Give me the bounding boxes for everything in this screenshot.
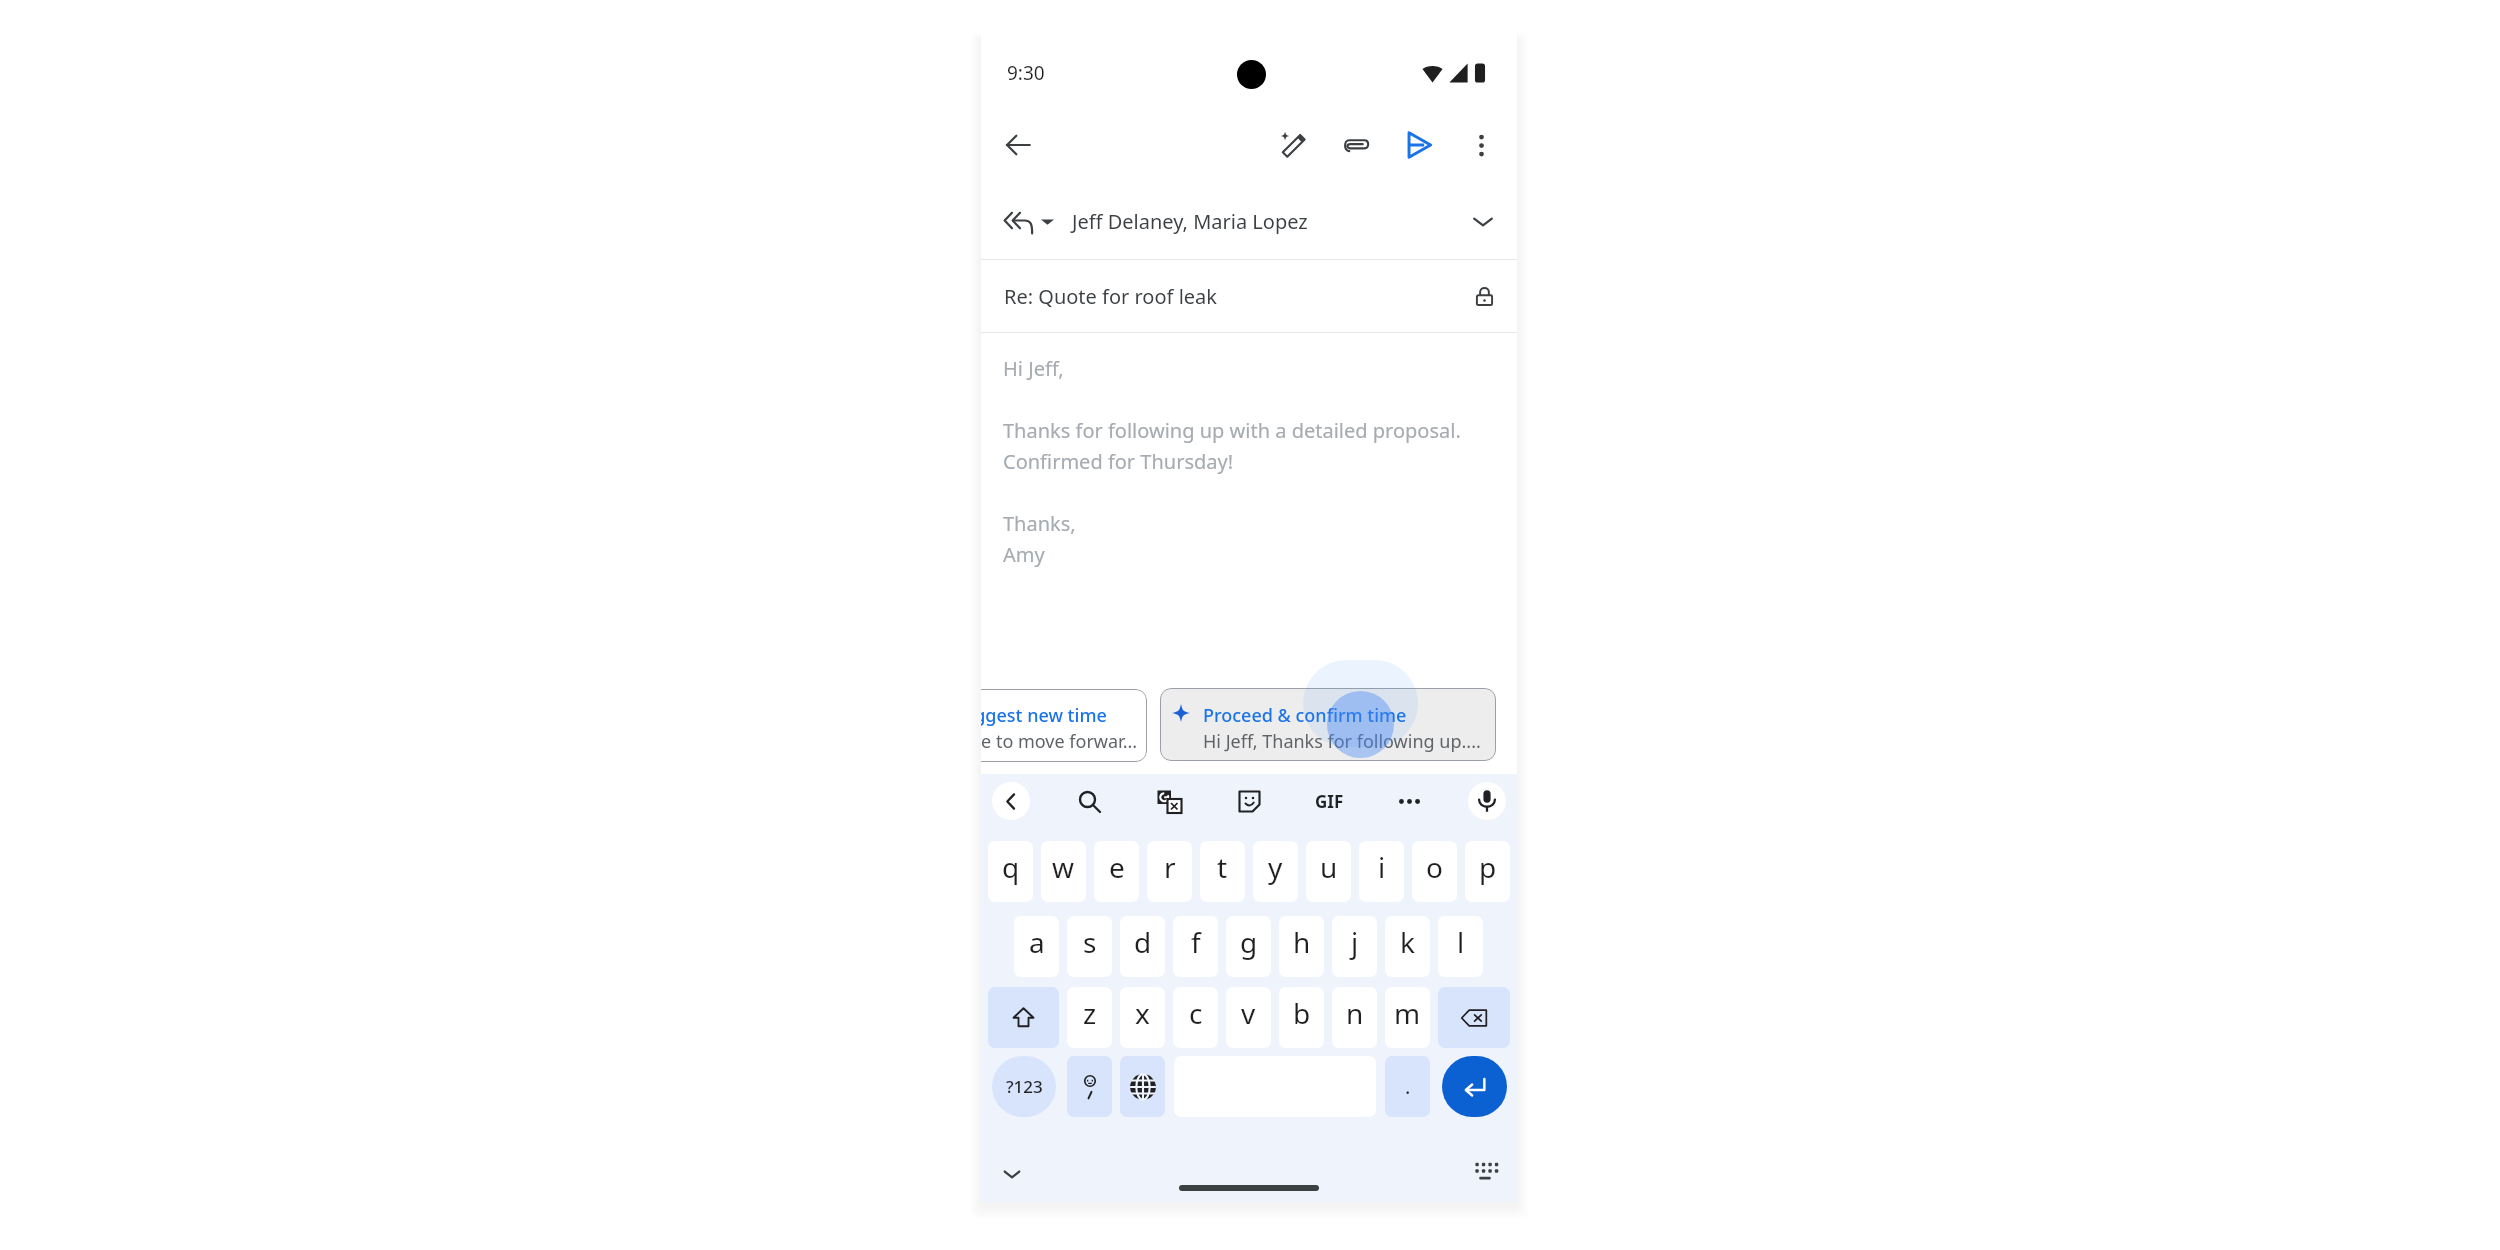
staticText: t	[1217, 848, 1228, 886]
staticText: GIF	[1315, 790, 1344, 813]
button[interactable]: l	[1438, 916, 1483, 977]
staticText: Hi Jeff, Thanks for following up....	[1203, 729, 1481, 754]
button[interactable]: Switch keyboard	[1465, 1149, 1505, 1189]
staticText: c	[1189, 994, 1203, 1032]
staticText: Hi Jeff, Thanks for following up with a …	[1003, 355, 1461, 568]
staticText: o	[1426, 848, 1443, 886]
staticText: a	[1029, 923, 1045, 961]
button[interactable]: e	[1094, 841, 1139, 902]
button[interactable]: w	[1041, 841, 1086, 902]
button[interactable]: c	[1173, 987, 1218, 1048]
button[interactable]: g	[1226, 916, 1271, 977]
staticText: z	[1083, 994, 1097, 1032]
button[interactable]: Shift	[988, 987, 1059, 1048]
staticText: q	[1002, 848, 1020, 886]
button[interactable]: Send	[1392, 119, 1444, 171]
button[interactable]: a	[1014, 916, 1059, 977]
staticText: w	[1052, 848, 1075, 886]
staticText: .	[1405, 1073, 1411, 1100]
staticText: m	[1394, 994, 1421, 1032]
staticText: d	[1134, 923, 1152, 961]
button[interactable]: Suggest new time	[981, 689, 1147, 762]
button[interactable]: Period	[1385, 1056, 1430, 1117]
button[interactable]: Voice input	[1468, 782, 1506, 820]
button[interactable]: Search	[1068, 780, 1110, 822]
button[interactable]: m	[1385, 987, 1430, 1048]
button[interactable]: s	[1067, 916, 1112, 977]
staticText: h	[1293, 923, 1311, 961]
staticText: Proceed & confirm time	[1203, 703, 1407, 728]
staticText: y	[1268, 848, 1283, 886]
staticText: r	[1164, 848, 1176, 886]
button[interactable]: r	[1147, 841, 1192, 902]
staticText: u	[1320, 848, 1338, 886]
button[interactable]: o	[1412, 841, 1457, 902]
button[interactable]: h	[1279, 916, 1324, 977]
button[interactable]: Change language	[1120, 1056, 1165, 1117]
button[interactable]: Backspace	[1438, 987, 1510, 1048]
button[interactable]: z	[1067, 987, 1112, 1048]
button[interactable]: Translate	[1148, 780, 1190, 822]
staticText: Sure to move forwar...	[981, 729, 1138, 754]
button[interactable]: Enter	[1442, 1056, 1507, 1117]
button[interactable]: Proceed & confirm time	[1160, 688, 1496, 761]
staticText: Jeff Delaney, Maria Lopez	[1072, 208, 1308, 235]
staticText: x	[1135, 994, 1150, 1032]
button[interactable]: Compose with AI	[1268, 119, 1320, 171]
button[interactable]: t	[1200, 841, 1245, 902]
button[interactable]: Re: Quote for roof leak	[981, 260, 1517, 332]
button[interactable]: b	[1279, 987, 1324, 1048]
button[interactable]: q	[988, 841, 1033, 902]
button[interactable]: y	[1253, 841, 1298, 902]
button[interactable]: Emoji	[1067, 1056, 1112, 1117]
button[interactable]: Back	[992, 782, 1030, 820]
button[interactable]: x	[1120, 987, 1165, 1048]
staticText: b	[1293, 994, 1311, 1032]
button[interactable]: Attach file	[1330, 119, 1382, 171]
button[interactable]: f	[1173, 916, 1218, 977]
staticText: n	[1346, 994, 1364, 1032]
staticText: v	[1241, 994, 1256, 1032]
button[interactable]: n	[1332, 987, 1377, 1048]
staticText: k	[1400, 923, 1415, 961]
button[interactable]: Hi Jeff, Thanks for following up with a …	[981, 333, 1517, 687]
button[interactable]: u	[1306, 841, 1351, 902]
staticText: g	[1240, 923, 1258, 961]
button[interactable]: p	[1465, 841, 1510, 902]
staticText: Re: Quote for roof leak	[1004, 283, 1217, 310]
button[interactable]: j	[1332, 916, 1377, 977]
staticText: s	[1083, 923, 1097, 961]
button[interactable]: GIF	[1308, 780, 1350, 822]
button[interactable]: Symbols	[992, 1056, 1056, 1117]
staticText: ?123	[1006, 1075, 1043, 1098]
staticText: f	[1191, 923, 1201, 961]
staticText: j	[1351, 923, 1359, 961]
staticText: e	[1109, 848, 1125, 886]
button[interactable]: More options	[1388, 780, 1430, 822]
button[interactable]: i	[1359, 841, 1404, 902]
button[interactable]: Jeff Delaney, Maria Lopez	[981, 183, 1517, 259]
staticText: Suggest new time	[981, 703, 1107, 728]
button[interactable]: v	[1226, 987, 1271, 1048]
button[interactable]: Stickers	[1228, 780, 1270, 822]
button[interactable]: k	[1385, 916, 1430, 977]
staticText: 9:30	[1007, 60, 1045, 86]
button[interactable]: More options	[1458, 122, 1504, 168]
button[interactable]: Back	[993, 120, 1043, 170]
button[interactable]: Hide keyboard	[992, 1154, 1032, 1194]
button[interactable]: d	[1120, 916, 1165, 977]
staticText: p	[1479, 848, 1497, 886]
staticText: i	[1378, 848, 1386, 886]
staticText: l	[1457, 923, 1465, 961]
